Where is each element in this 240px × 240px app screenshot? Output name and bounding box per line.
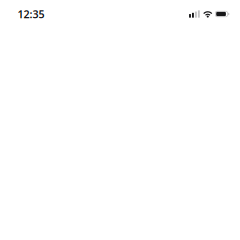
staticText: 12:35 [17, 7, 44, 21]
